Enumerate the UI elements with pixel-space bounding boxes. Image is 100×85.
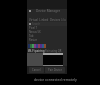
staticText: Tab — [29, 34, 34, 38]
staticText: device connected remotely — [34, 77, 77, 82]
button[interactable]: Cancel — [29, 67, 44, 73]
button[interactable]: Tab — [27, 34, 67, 38]
staticText: Pixel 7 — [29, 26, 38, 30]
button[interactable]: Menu — [28, 9, 32, 13]
staticText: Wi-Fi pairing — [28, 49, 45, 53]
staticText: Cancel — [32, 68, 41, 72]
button[interactable]: All Devices — [61, 18, 65, 22]
button[interactable]: Resize — [27, 38, 67, 42]
button[interactable]: Search — [27, 22, 67, 26]
button[interactable]: Pixel 7 — [27, 26, 67, 30]
staticText: Pair Device — [48, 68, 62, 72]
staticText: Pair using QR code — [45, 49, 66, 53]
staticText: All Devices — [61, 18, 65, 22]
button[interactable]: Pair Device — [45, 67, 65, 73]
staticText: Search — [32, 22, 41, 26]
button[interactable]: Nexus 5X — [27, 30, 67, 34]
staticText: Resize — [29, 38, 37, 42]
staticText: Device Manager — [36, 9, 61, 13]
staticText: Virtual Linked Devices — [29, 18, 61, 22]
staticText: Nexus 5X — [29, 30, 41, 34]
